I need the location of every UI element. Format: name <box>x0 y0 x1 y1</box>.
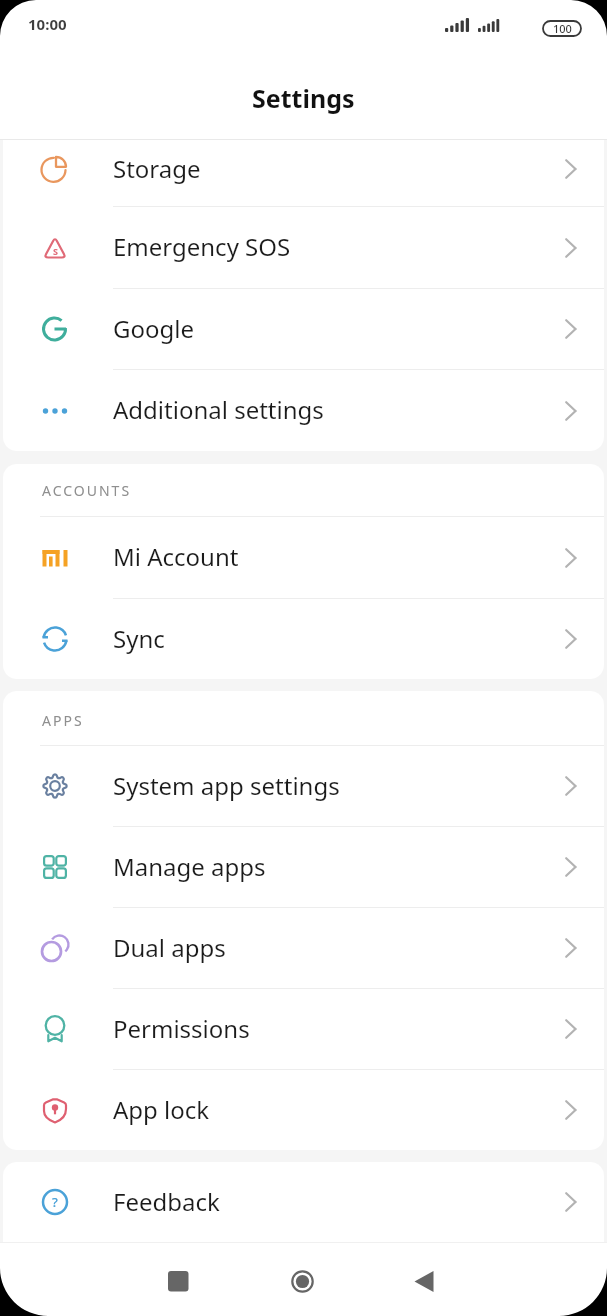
staticText: Emergency SOS <box>113 230 291 263</box>
staticText: ACCOUNTS <box>42 481 132 500</box>
button[interactable]: Dual apps <box>3 908 604 988</box>
button[interactable] <box>291 1270 314 1293</box>
staticText: 10:00 <box>28 14 67 34</box>
staticText: Settings <box>252 81 355 115</box>
staticText: Feedback <box>113 1185 220 1218</box>
staticText: App lock <box>113 1093 210 1126</box>
staticText: Sync <box>113 622 165 655</box>
button[interactable]: ? <box>3 1162 604 1242</box>
staticText: Google <box>113 312 194 345</box>
button[interactable]: Permissions <box>3 989 604 1069</box>
button[interactable]: Storage <box>3 140 604 206</box>
staticText: Dual apps <box>113 931 226 964</box>
button[interactable]: Manage apps <box>3 827 604 907</box>
button[interactable] <box>168 1271 189 1292</box>
button[interactable]: Sync <box>3 599 604 679</box>
staticText: Manage apps <box>113 850 266 883</box>
button[interactable]: App lock <box>3 1070 604 1150</box>
button[interactable] <box>414 1271 435 1292</box>
staticText: Permissions <box>113 1012 250 1045</box>
staticText: APPS <box>42 711 84 730</box>
staticText: Mi Account <box>113 540 239 573</box>
button[interactable]: S <box>3 207 604 288</box>
button[interactable]: System app settings <box>3 746 604 826</box>
staticText: ? <box>52 1193 58 1211</box>
staticText: S <box>53 245 58 257</box>
button[interactable]: Additional settings <box>3 370 604 451</box>
staticText: 100 <box>553 21 572 36</box>
staticText: Additional settings <box>113 393 324 426</box>
staticText: System app settings <box>113 769 340 802</box>
staticText: Storage <box>113 152 201 185</box>
button[interactable]: Google <box>3 289 604 369</box>
button[interactable]: Mi Account <box>3 517 604 598</box>
